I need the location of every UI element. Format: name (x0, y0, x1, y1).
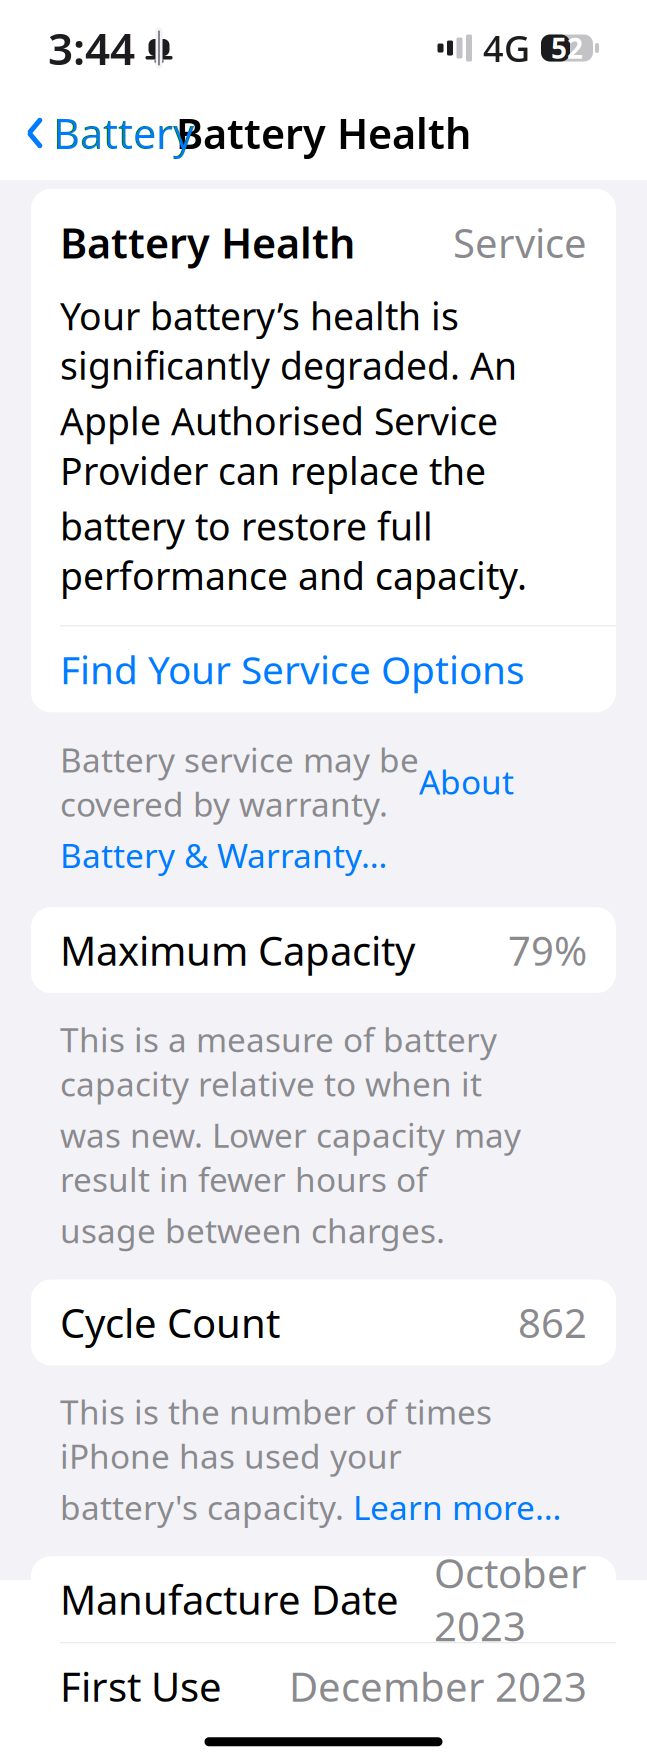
staticText: Maximum Capacity (60, 924, 415, 977)
button[interactable]: Battery & Warranty… (60, 833, 387, 877)
staticText: Cycle Count (60, 1296, 280, 1349)
staticText: battery to restore full performance and … (60, 501, 527, 600)
staticText: Manufacture Date (60, 1573, 399, 1626)
staticText: Find Your Service Options (60, 644, 525, 695)
staticText: October 2023 (434, 1546, 587, 1652)
staticText: 4G (483, 24, 530, 72)
staticText: Battery & Warranty… (60, 833, 387, 877)
staticText: About (419, 759, 514, 804)
staticText: was new. Lower capacity may result in fe… (60, 1113, 521, 1201)
staticText: This is the number of times iPhone has u… (60, 1389, 492, 1478)
staticText: Your battery’s health is significantly d… (60, 291, 517, 390)
button[interactable]: Find Your Service Options (31, 626, 616, 712)
staticText: usage between charges. (60, 1208, 445, 1252)
staticText: Service (453, 216, 587, 269)
staticText: 52 (551, 29, 583, 67)
staticText: Battery service may be covered by warran… (60, 737, 419, 826)
staticText: 3:44 (48, 19, 135, 77)
staticText: battery's capacity. (60, 1485, 353, 1529)
staticText: Battery Health (176, 106, 471, 160)
staticText: Battery Health (60, 215, 355, 270)
staticText: December 2023 (289, 1660, 587, 1713)
button[interactable]: Battery (8, 96, 212, 170)
staticText: Battery (53, 106, 194, 160)
staticText: This is a measure of battery capacity re… (60, 1017, 497, 1106)
staticText: 862 (518, 1296, 587, 1349)
staticText: First Use (60, 1660, 222, 1713)
staticText: 79% (508, 924, 587, 977)
staticText: Learn more… (353, 1485, 561, 1529)
button[interactable]: Learn more… (353, 1485, 561, 1529)
staticText: Apple Authorised Service Provider can re… (60, 396, 498, 495)
